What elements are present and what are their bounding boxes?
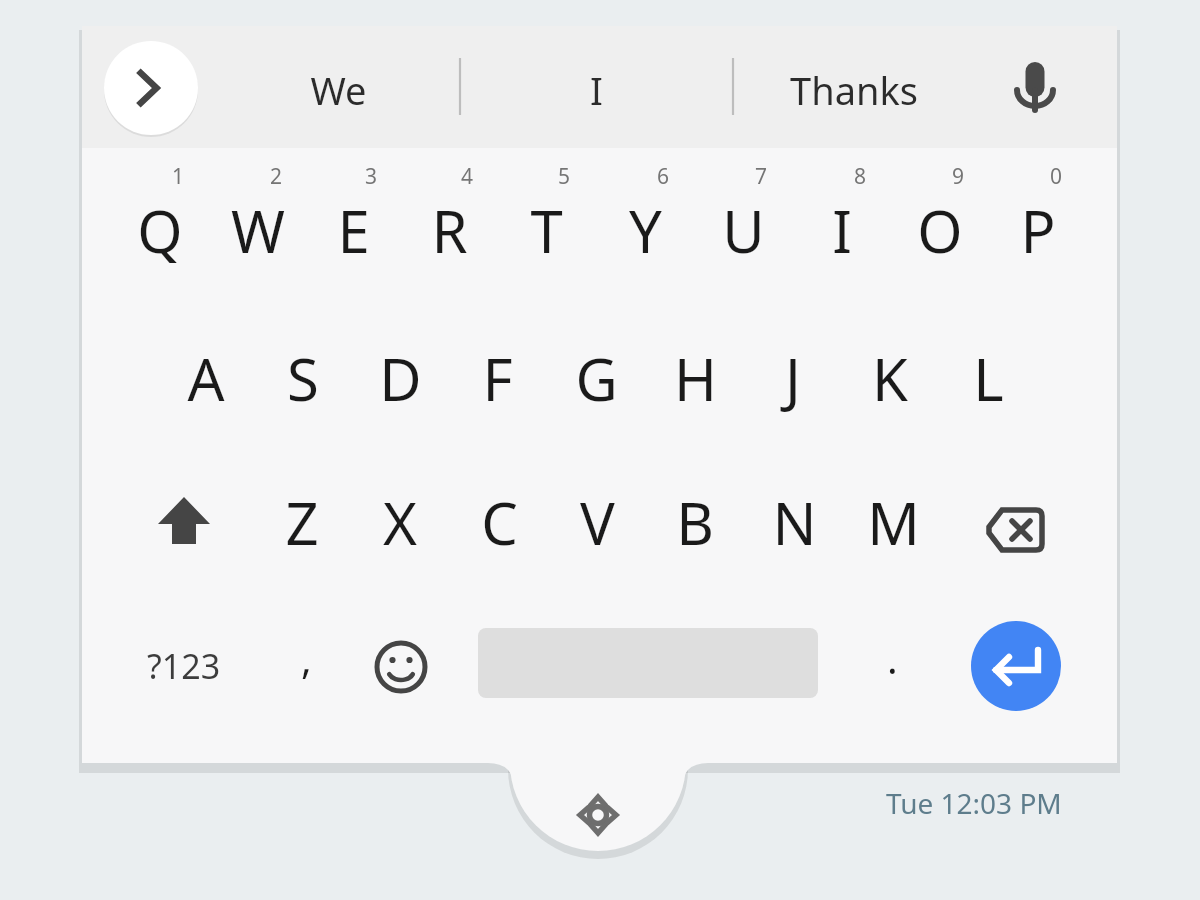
- button[interactable]: M: [847, 467, 939, 577]
- button[interactable]: Emoji: [366, 632, 436, 702]
- staticText: L: [973, 339, 1004, 418]
- button[interactable]: E: [307, 175, 399, 285]
- button[interactable]: C: [453, 467, 545, 577]
- button[interactable]: U: [697, 175, 789, 285]
- button[interactable]: F: [451, 323, 543, 433]
- button[interactable]: Backspace: [968, 482, 1064, 578]
- button[interactable]: L: [942, 323, 1034, 433]
- button[interactable]: H: [649, 323, 741, 433]
- button[interactable]: A: [160, 323, 252, 433]
- staticText: A: [187, 339, 225, 418]
- staticText: 4: [461, 162, 497, 191]
- staticText: H: [674, 339, 717, 418]
- button[interactable]: X: [354, 467, 446, 577]
- button[interactable]: T: [500, 175, 592, 285]
- button[interactable]: Voice input: [995, 48, 1075, 128]
- staticText: 2: [270, 162, 306, 191]
- staticText: V: [580, 483, 615, 562]
- button[interactable]: G: [550, 323, 642, 433]
- button[interactable]: V: [551, 467, 643, 577]
- staticText: .: [887, 631, 898, 685]
- staticText: C: [481, 483, 518, 562]
- button[interactable]: ,: [276, 630, 336, 702]
- button[interactable]: Move keyboard: [552, 769, 644, 861]
- button[interactable]: I: [471, 35, 721, 145]
- button[interactable]: Z: [256, 467, 348, 577]
- staticText: 9: [952, 162, 988, 191]
- staticText: Z: [285, 483, 319, 562]
- button[interactable]: J: [747, 323, 839, 433]
- staticText: P: [1020, 191, 1056, 270]
- staticText: D: [379, 339, 422, 418]
- button[interactable]: W: [212, 175, 304, 285]
- button[interactable]: Y: [599, 175, 691, 285]
- button[interactable]: Thanks: [729, 35, 979, 145]
- staticText: B: [676, 483, 714, 562]
- button[interactable]: N: [748, 467, 840, 577]
- staticText: E: [337, 191, 370, 270]
- staticText: J: [785, 339, 801, 418]
- button[interactable]: Q: [114, 175, 206, 285]
- staticText: We: [310, 64, 367, 116]
- staticText: 1: [172, 162, 208, 191]
- button[interactable]: Enter: [970, 620, 1062, 712]
- staticText: 0: [1050, 162, 1086, 191]
- staticText: 7: [755, 162, 791, 191]
- staticText: X: [383, 483, 417, 562]
- button[interactable]: S: [257, 323, 349, 433]
- staticText: U: [722, 191, 765, 270]
- staticText: I: [590, 64, 603, 116]
- staticText: S: [287, 339, 319, 418]
- staticText: M: [867, 483, 920, 562]
- button[interactable]: .: [862, 630, 922, 702]
- staticText: 8: [854, 162, 890, 191]
- staticText: 3: [365, 162, 401, 191]
- staticText: 5: [558, 162, 594, 191]
- button[interactable]: We: [168, 35, 508, 145]
- staticText: 6: [657, 162, 693, 191]
- staticText: N: [772, 483, 817, 562]
- staticText: I: [832, 191, 852, 270]
- button[interactable]: K: [844, 323, 936, 433]
- button[interactable]: Shift: [140, 478, 228, 566]
- staticText: Y: [629, 191, 662, 270]
- button[interactable]: R: [403, 175, 495, 285]
- staticText: K: [872, 339, 908, 418]
- button[interactable]: ?123: [126, 630, 242, 702]
- staticText: Q: [137, 191, 183, 270]
- staticText: R: [431, 191, 468, 270]
- button[interactable]: P: [992, 175, 1084, 285]
- button[interactable]: B: [649, 467, 741, 577]
- staticText: W: [231, 191, 285, 270]
- staticText: ,: [301, 631, 312, 685]
- staticText: F: [482, 339, 513, 418]
- staticText: ?123: [147, 643, 221, 689]
- button[interactable]: D: [354, 323, 446, 433]
- staticText: Thanks: [790, 64, 918, 116]
- button[interactable]: O: [894, 175, 986, 285]
- staticText: Tue 12:03 PM: [886, 784, 1062, 822]
- staticText: O: [917, 191, 963, 270]
- button[interactable]: Expand suggestions: [104, 41, 198, 135]
- button[interactable]: I: [796, 175, 888, 285]
- staticText: T: [530, 191, 563, 270]
- staticText: G: [575, 339, 618, 418]
